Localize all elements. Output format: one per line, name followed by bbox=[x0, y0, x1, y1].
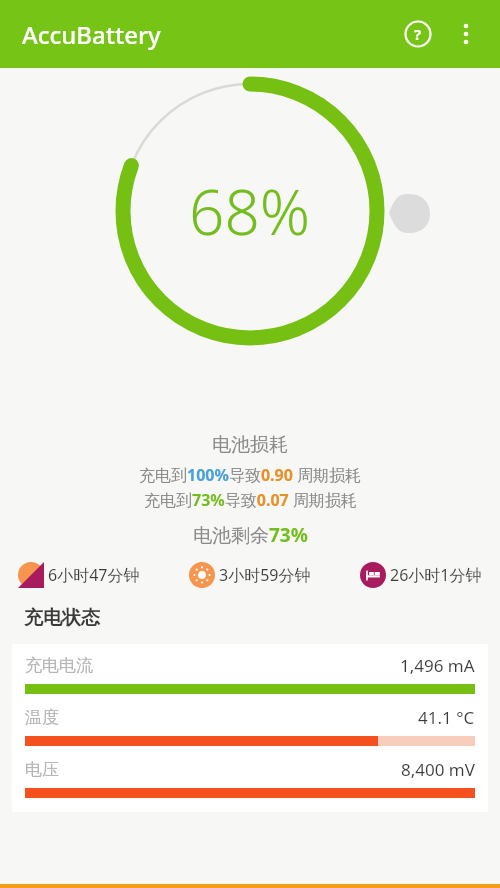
staticText: 1,496 mA bbox=[400, 654, 475, 677]
staticText: 充电到100%导致0.90 周期损耗 bbox=[139, 464, 362, 486]
staticText: AccuBattery bbox=[22, 18, 161, 51]
button[interactable]: 充电电流 bbox=[25, 654, 475, 798]
staticText: 电池剩余73% bbox=[193, 522, 308, 548]
staticText: 充电电流 bbox=[25, 655, 93, 676]
staticText: 26小时1分钟 bbox=[390, 564, 482, 586]
staticText: 68% bbox=[189, 169, 311, 253]
button[interactable]: 6小时47分钟 bbox=[18, 562, 140, 588]
staticText: ? bbox=[414, 24, 422, 44]
staticText: 6小时47分钟 bbox=[48, 564, 140, 586]
staticText: 41.1 °C bbox=[418, 706, 475, 729]
button[interactable]: 3小时59分钟 bbox=[189, 562, 311, 588]
button[interactable]: More options bbox=[446, 14, 486, 54]
staticText: 电压 bbox=[25, 759, 59, 780]
staticText: 3小时59分钟 bbox=[219, 564, 311, 586]
staticText: 温度 bbox=[25, 707, 59, 728]
button[interactable]: Help bbox=[398, 14, 438, 54]
staticText: 电池损耗 bbox=[212, 433, 288, 457]
staticText: 充电状态 bbox=[24, 606, 100, 630]
button[interactable]: 26小时1分钟 bbox=[360, 562, 482, 588]
staticText: 充电到73%导致0.07 周期损耗 bbox=[144, 489, 357, 511]
staticText: 8,400 mV bbox=[401, 758, 475, 781]
